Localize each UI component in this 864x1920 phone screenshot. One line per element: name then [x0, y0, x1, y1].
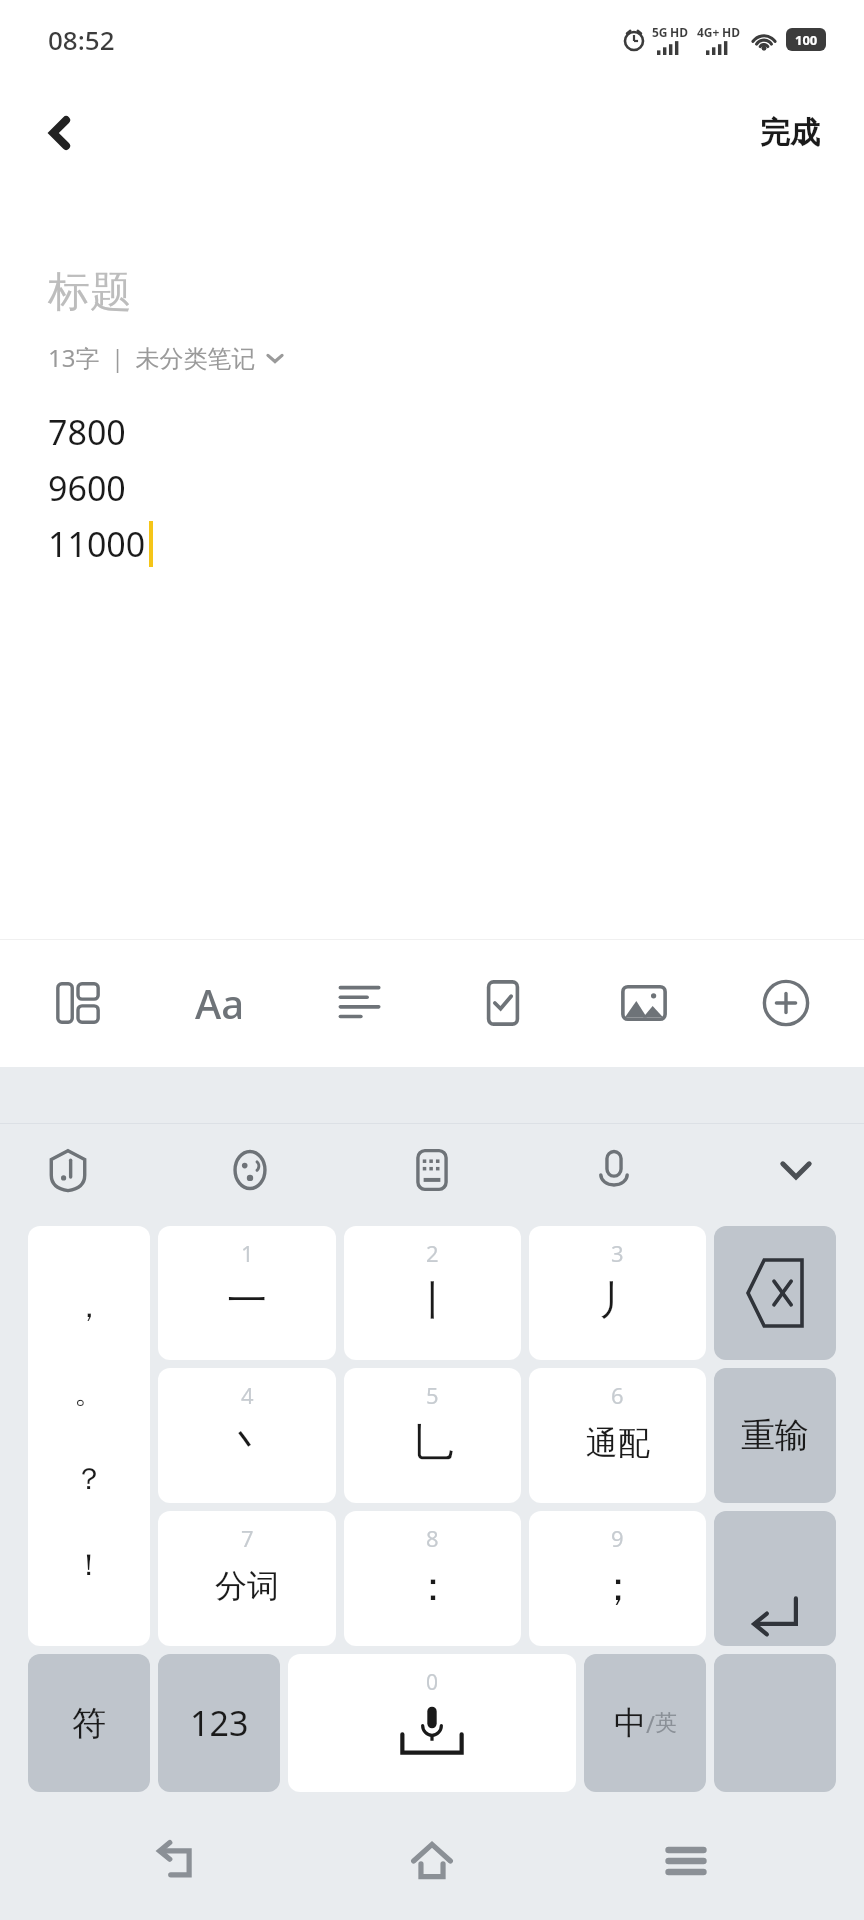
button[interactable]: 中/英: [584, 1654, 706, 1792]
staticText: ？: [74, 1460, 104, 1498]
button[interactable]: 123: [158, 1654, 280, 1792]
staticText: 丿: [598, 1275, 638, 1325]
staticText: 中: [614, 1703, 646, 1743]
staticText: 5: [426, 1380, 439, 1410]
staticText: 通配: [586, 1423, 650, 1463]
staticText: 4: [241, 1380, 254, 1410]
staticText: 完成: [760, 114, 820, 152]
button[interactable]: Privacy shield: [22, 1128, 114, 1212]
staticText: 13字 ｜ 未分类笔记: [48, 341, 256, 374]
staticText: HD: [722, 24, 740, 40]
staticText: 100: [795, 31, 818, 49]
staticText: 5G: [652, 24, 668, 40]
button[interactable]: Enter: [714, 1511, 836, 1646]
staticText: 。: [74, 1374, 104, 1412]
button[interactable]: 符: [28, 1654, 150, 1792]
staticText: 丨: [413, 1275, 453, 1325]
button[interactable]: ， 。 ？ ！: [28, 1226, 150, 1646]
button[interactable]: Layout: [30, 948, 126, 1058]
staticText: 分词: [215, 1566, 279, 1606]
button[interactable]: 分词: [158, 1511, 336, 1646]
staticText: 乚: [413, 1418, 453, 1468]
button[interactable]: 13字 ｜ 未分类笔记: [48, 341, 286, 374]
button[interactable]: 丿: [529, 1226, 706, 1360]
staticText: HD: [670, 24, 688, 40]
staticText: 08:52: [48, 22, 115, 57]
staticText: 标题: [48, 266, 132, 319]
button[interactable]: Space / voice: [288, 1654, 576, 1792]
button[interactable]: Keyboard layout: [386, 1128, 478, 1212]
staticText: ，: [74, 1288, 104, 1326]
staticText: 2: [426, 1238, 439, 1268]
button[interactable]: Home: [357, 1806, 507, 1916]
staticText: 7: [241, 1523, 254, 1553]
button[interactable]: Align: [313, 948, 409, 1058]
staticText: 7800: [48, 409, 126, 455]
button[interactable]: ：: [344, 1511, 521, 1646]
staticText: 9: [611, 1523, 624, 1553]
button[interactable]: 丶: [158, 1368, 336, 1503]
button[interactable]: Hide keyboard: [750, 1128, 842, 1212]
button[interactable]: Recents: [611, 1806, 761, 1916]
button[interactable]: 一: [158, 1226, 336, 1360]
button[interactable]: Back: [104, 1806, 254, 1916]
staticText: 4G+: [697, 24, 720, 40]
button[interactable]: Voice input: [568, 1128, 660, 1212]
button[interactable]: Emoji: [204, 1128, 296, 1212]
staticText: 8: [426, 1523, 439, 1553]
staticText: 重输: [741, 1414, 809, 1457]
button[interactable]: 通配: [529, 1368, 706, 1503]
staticText: 一: [227, 1275, 267, 1325]
button[interactable]: 重输: [714, 1368, 836, 1503]
button[interactable]: Image: [596, 948, 692, 1058]
staticText: 符: [72, 1702, 106, 1745]
staticText: ！: [74, 1546, 104, 1584]
button[interactable]: 丨: [344, 1226, 521, 1360]
button[interactable]: Back: [22, 95, 98, 171]
staticText: Aa: [195, 976, 245, 1030]
staticText: 0: [426, 1668, 439, 1697]
staticText: 丶: [227, 1418, 267, 1468]
staticText: ；: [598, 1561, 638, 1611]
staticText: 1: [241, 1238, 254, 1268]
button[interactable]: 完成: [746, 102, 834, 164]
button[interactable]: Add: [738, 948, 834, 1058]
staticText: 11000: [48, 521, 146, 567]
staticText: 123: [190, 1700, 249, 1746]
button[interactable]: ；: [529, 1511, 706, 1646]
button[interactable]: Enter: [714, 1654, 836, 1792]
staticText: 9600: [48, 465, 126, 511]
button[interactable]: Backspace: [714, 1226, 836, 1360]
staticText: /: [646, 1707, 655, 1740]
staticText: 6: [611, 1380, 624, 1410]
button[interactable]: Font: [172, 948, 268, 1058]
staticText: 英: [655, 1709, 677, 1737]
staticText: ：: [413, 1561, 453, 1611]
staticText: 3: [611, 1238, 624, 1268]
button[interactable]: Checklist: [455, 948, 551, 1058]
button[interactable]: 乚: [344, 1368, 521, 1503]
